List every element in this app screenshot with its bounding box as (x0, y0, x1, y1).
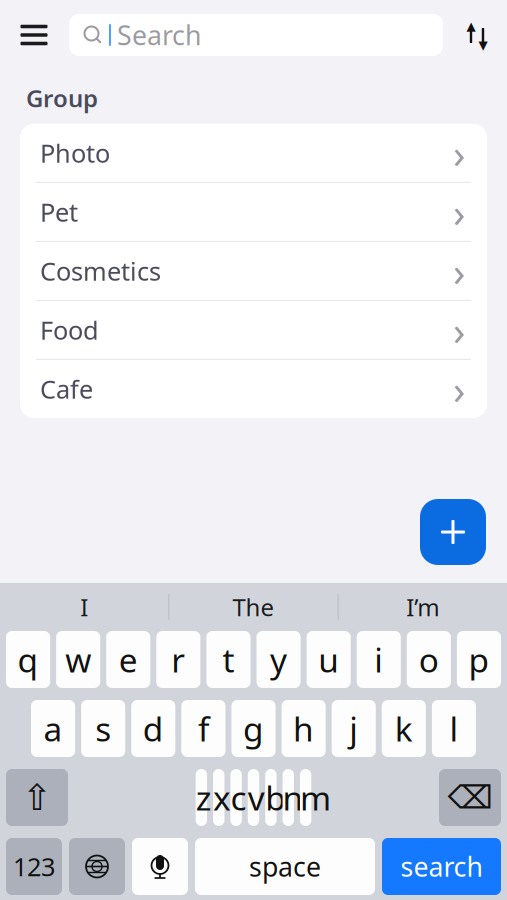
button[interactable]: s (81, 700, 125, 757)
staticText: p (468, 637, 489, 682)
button[interactable]: Add (420, 499, 486, 565)
button[interactable]: Next keyboard (69, 838, 125, 895)
staticText: r (171, 637, 185, 682)
button[interactable]: Pet (20, 182, 487, 241)
button[interactable]: search (382, 838, 501, 895)
staticText: space (249, 849, 321, 884)
staticText: k (395, 706, 413, 751)
button[interactable]: f (181, 700, 225, 757)
staticText: l (449, 706, 458, 751)
button[interactable]: Search (69, 14, 443, 56)
button[interactable]: Photo (20, 124, 487, 182)
staticText: ▼ (478, 38, 487, 52)
button[interactable]: d (131, 700, 175, 757)
staticText: d (143, 706, 164, 751)
button[interactable]: j (332, 700, 376, 757)
staticText: › (453, 362, 465, 415)
button[interactable]: The (169, 583, 338, 631)
button[interactable]: Food (20, 300, 487, 359)
button[interactable]: v (248, 769, 259, 826)
button[interactable]: b (265, 769, 277, 826)
staticText: ⇧ (22, 777, 52, 818)
staticText: q (17, 637, 38, 682)
staticText: Food (40, 313, 99, 347)
staticText: h (293, 706, 314, 751)
staticText: › (453, 126, 465, 179)
staticText: e (119, 637, 138, 682)
staticText: o (419, 637, 439, 682)
staticText: g (243, 706, 264, 751)
staticText: The (232, 591, 274, 623)
staticText: b (265, 775, 277, 820)
staticText: z (196, 775, 207, 820)
staticText: Cafe (40, 372, 93, 406)
button[interactable]: i (357, 631, 401, 688)
staticText: u (318, 637, 339, 682)
staticText: 123 (13, 850, 55, 883)
button[interactable]: Cafe (20, 359, 487, 418)
staticText: › (453, 303, 465, 356)
staticText: ▲ (466, 19, 475, 33)
staticText: Pet (40, 195, 78, 229)
button[interactable]: I’m (339, 583, 507, 631)
staticText: › (453, 244, 465, 297)
staticText: j (349, 706, 358, 751)
staticText: › (453, 185, 465, 238)
staticText: f (198, 706, 209, 751)
button[interactable]: o (407, 631, 451, 688)
staticText: Photo (40, 136, 110, 170)
button[interactable]: e (106, 631, 150, 688)
staticText: I’m (406, 591, 439, 623)
button[interactable]: u (307, 631, 351, 688)
button[interactable]: k (382, 700, 426, 757)
button[interactable]: t (206, 631, 250, 688)
staticText: x (213, 775, 224, 820)
staticText: y (270, 637, 287, 682)
button[interactable]: h (282, 700, 326, 757)
button[interactable]: y (256, 631, 301, 688)
staticText: i (374, 637, 383, 682)
button[interactable]: c (230, 769, 242, 826)
button[interactable]: space (195, 838, 375, 895)
button[interactable]: Menu (12, 13, 56, 57)
button[interactable]: Shift (6, 769, 68, 826)
button[interactable]: l (432, 700, 476, 757)
button[interactable]: Dictation (132, 838, 188, 895)
staticText: ⌫ (447, 779, 492, 816)
staticText: n (283, 775, 294, 820)
button[interactable]: p (457, 631, 501, 688)
button[interactable]: m (300, 769, 311, 826)
staticText: w (65, 637, 91, 682)
button[interactable]: w (56, 631, 100, 688)
staticText: Cosmetics (40, 254, 161, 288)
button[interactable]: 123 (6, 838, 62, 895)
staticText: m (300, 775, 311, 820)
button[interactable]: a (31, 700, 75, 757)
button[interactable]: n (283, 769, 294, 826)
staticText: I (80, 591, 88, 623)
staticText: a (44, 706, 63, 751)
button[interactable]: q (6, 631, 50, 688)
staticText: t (222, 637, 234, 682)
staticText: Search (117, 17, 201, 53)
staticText: s (95, 706, 111, 751)
button[interactable]: z (196, 769, 207, 826)
button[interactable]: g (231, 700, 275, 757)
staticText: c (230, 775, 242, 820)
staticText: Group (26, 82, 98, 114)
button[interactable]: r (156, 631, 200, 688)
staticText: v (248, 775, 259, 820)
button[interactable]: Cosmetics (20, 241, 487, 300)
button[interactable]: Sort (457, 13, 497, 57)
button[interactable]: Delete (439, 769, 501, 826)
staticText: search (400, 849, 482, 884)
button[interactable]: I (0, 583, 168, 631)
button[interactable]: x (213, 769, 224, 826)
